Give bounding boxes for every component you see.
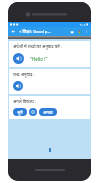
button[interactable]: Play Store	[77, 29, 83, 35]
button[interactable]: Speak word	[13, 81, 23, 91]
button[interactable]: अंग्रेजी में शब्दों का अनुवाद करें :	[9, 41, 90, 67]
staticText: < शिक्षा: Good p...	[19, 29, 69, 35]
button[interactable]: अगला	[39, 108, 57, 116]
button[interactable]: Replay	[29, 108, 37, 116]
staticText: सुनें	[17, 110, 23, 115]
button[interactable]: अगले विकल्प :	[9, 96, 90, 119]
staticText: "Hello !"	[30, 56, 48, 62]
button[interactable]: Cart	[69, 29, 75, 35]
staticText: अगला	[43, 110, 53, 115]
button[interactable]: Play pronunciation	[13, 53, 24, 64]
staticText: अंग्रेजी में शब्दों का अनुवाद करें :	[13, 44, 62, 50]
staticText: अगले विकल्प :	[13, 99, 37, 105]
staticText: शब्द अनुवाद :	[13, 72, 35, 78]
button[interactable]: More options	[84, 29, 89, 34]
button[interactable]: शब्द अनुवाद :	[9, 69, 90, 94]
button[interactable]: सुनें	[13, 108, 27, 116]
button[interactable]: Back	[10, 28, 17, 35]
